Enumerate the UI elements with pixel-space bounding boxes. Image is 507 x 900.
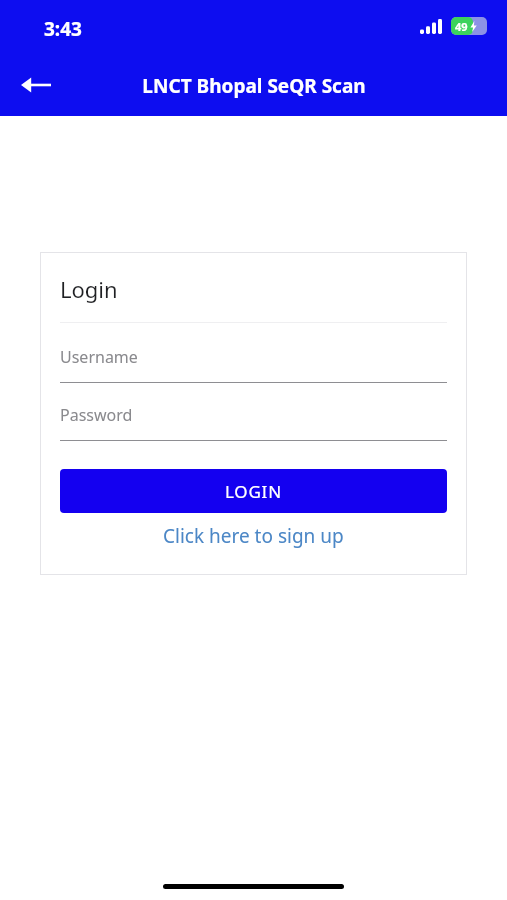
button[interactable]: Password (60, 404, 447, 426)
button[interactable]: LOGIN (60, 469, 447, 513)
staticText: LOGIN (225, 480, 282, 503)
staticText: 3:43 (44, 16, 82, 42)
button[interactable]: Click here to sign up (60, 513, 447, 559)
staticText: LNCT Bhopal SeQR Scan (142, 73, 366, 99)
staticText: Click here to sign up (163, 523, 344, 549)
button[interactable]: Username (60, 346, 447, 368)
staticText: 49 (455, 19, 468, 34)
staticText: Login (60, 274, 118, 304)
button[interactable]: Back (12, 61, 60, 109)
